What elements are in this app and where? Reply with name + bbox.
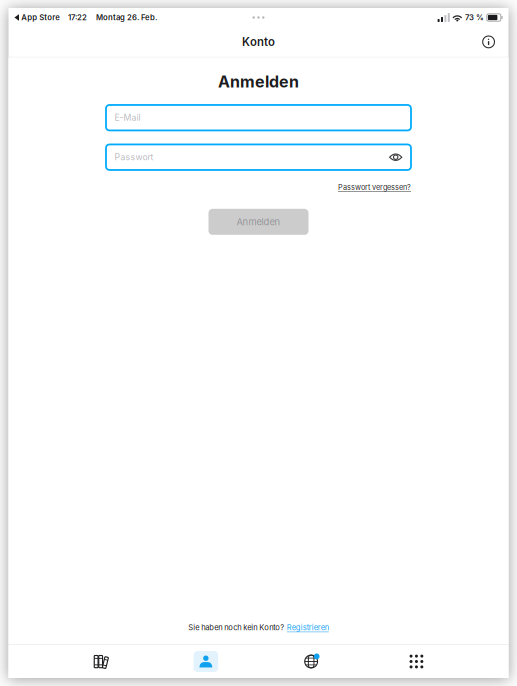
staticText: Anmelden <box>236 216 280 227</box>
button[interactable]: Passwort einblenden <box>389 146 402 168</box>
button[interactable]: Entdecken <box>258 645 364 678</box>
staticText: 17:22 <box>68 13 87 22</box>
staticText: Passwort <box>115 152 154 162</box>
staticText: Konto <box>242 35 275 49</box>
staticText: Registrieren <box>287 623 329 632</box>
button[interactable]: Registrieren <box>287 623 329 632</box>
staticText: Anmelden <box>218 72 299 91</box>
button[interactable]: Passwort vergessen? <box>338 183 411 192</box>
staticText: Sie haben noch kein Konto? <box>188 623 284 632</box>
staticText: E-Mail <box>115 112 141 123</box>
staticText: App Store <box>21 13 60 22</box>
button[interactable]: Konto <box>153 645 258 678</box>
staticText: Passwort vergessen? <box>338 183 411 192</box>
staticText: 73 % <box>465 13 484 22</box>
button[interactable]: Bibliothek <box>48 645 153 678</box>
button[interactable]: Mehr <box>364 645 469 678</box>
staticText: Montag 26. Feb. <box>96 13 157 22</box>
button[interactable]: Anmelden <box>208 209 308 235</box>
button[interactable]: Informationen <box>469 27 508 57</box>
